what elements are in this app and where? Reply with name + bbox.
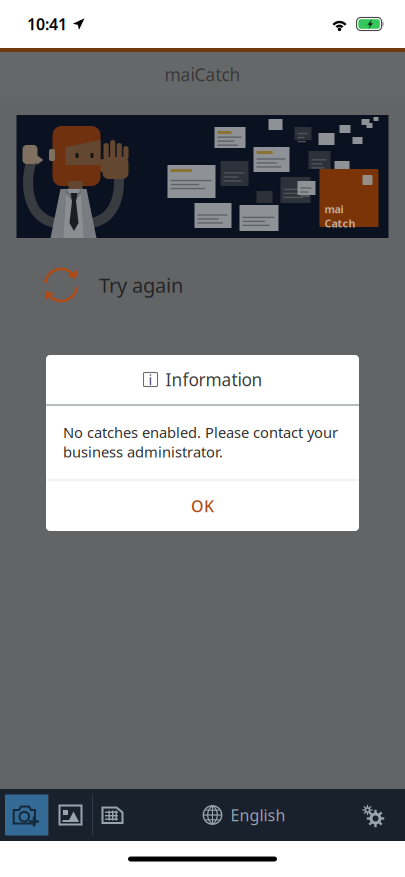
button[interactable]: Documents [93,794,136,835]
button[interactable]: OK [46,480,359,531]
staticText: Catch [324,216,355,230]
button[interactable]: English [202,794,285,835]
button[interactable]: Try again [0,238,405,332]
staticText: 10:41 [27,13,67,35]
button[interactable]: Settings [352,794,392,835]
staticText: English [230,804,285,826]
staticText: OK [191,495,214,517]
button[interactable]: Take photo [5,794,48,835]
staticText: maiCatch [164,63,240,86]
staticText: Information [165,368,262,391]
staticText: No catches enabled. Please contact your … [63,422,338,461]
button[interactable]: Photo library [49,794,92,835]
staticText: i [148,370,152,389]
staticText: mai [324,202,343,216]
staticText: Try again [99,272,183,298]
